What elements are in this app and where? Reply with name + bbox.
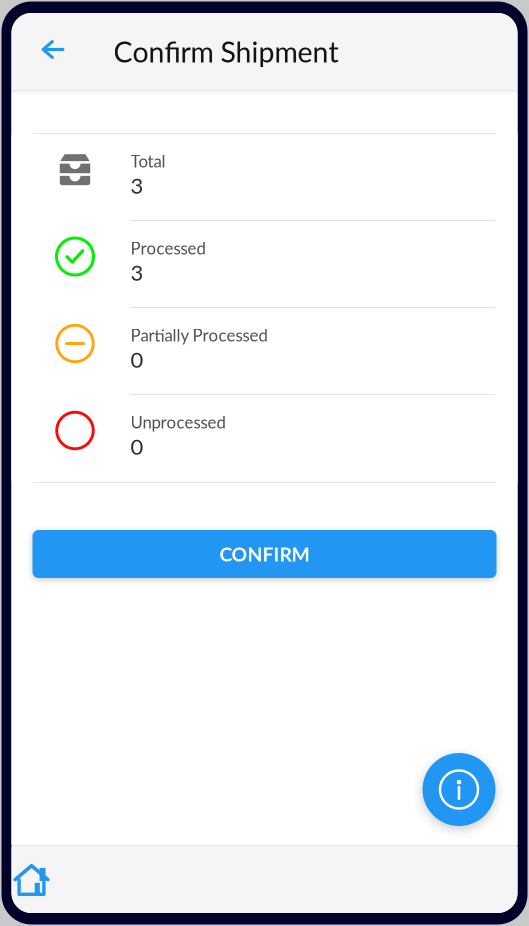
staticText: CONFIRM <box>219 542 309 566</box>
staticText: Partially Processed <box>130 325 267 345</box>
staticText: Confirm Shipment <box>113 34 338 69</box>
staticText: Total <box>130 151 165 171</box>
staticText: 0 <box>130 433 143 460</box>
staticText: Unprocessed <box>130 412 225 432</box>
button[interactable]: Home <box>12 855 50 905</box>
button[interactable]: Back <box>29 29 73 73</box>
button[interactable]: Info <box>422 753 495 826</box>
staticText: Processed <box>130 238 205 258</box>
staticText: 3 <box>130 172 143 199</box>
button[interactable]: CONFIRM <box>32 530 496 578</box>
staticText: 3 <box>130 259 143 286</box>
staticText: 0 <box>130 346 143 373</box>
